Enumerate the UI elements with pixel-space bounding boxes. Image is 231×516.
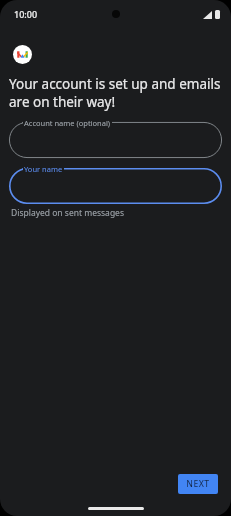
staticText: Your name	[24, 164, 63, 174]
staticText: Displayed on sent messages	[11, 207, 124, 219]
button[interactable]: NEXT	[178, 474, 218, 494]
button[interactable]: Your name	[9, 168, 222, 204]
staticText: Account name (optional)	[24, 118, 111, 128]
staticText: NEXT	[186, 478, 210, 490]
button[interactable]: Account name (optional)	[9, 122, 222, 158]
staticText: 10:00	[14, 8, 38, 20]
staticText: Your account is set up and emails are on…	[9, 75, 221, 111]
